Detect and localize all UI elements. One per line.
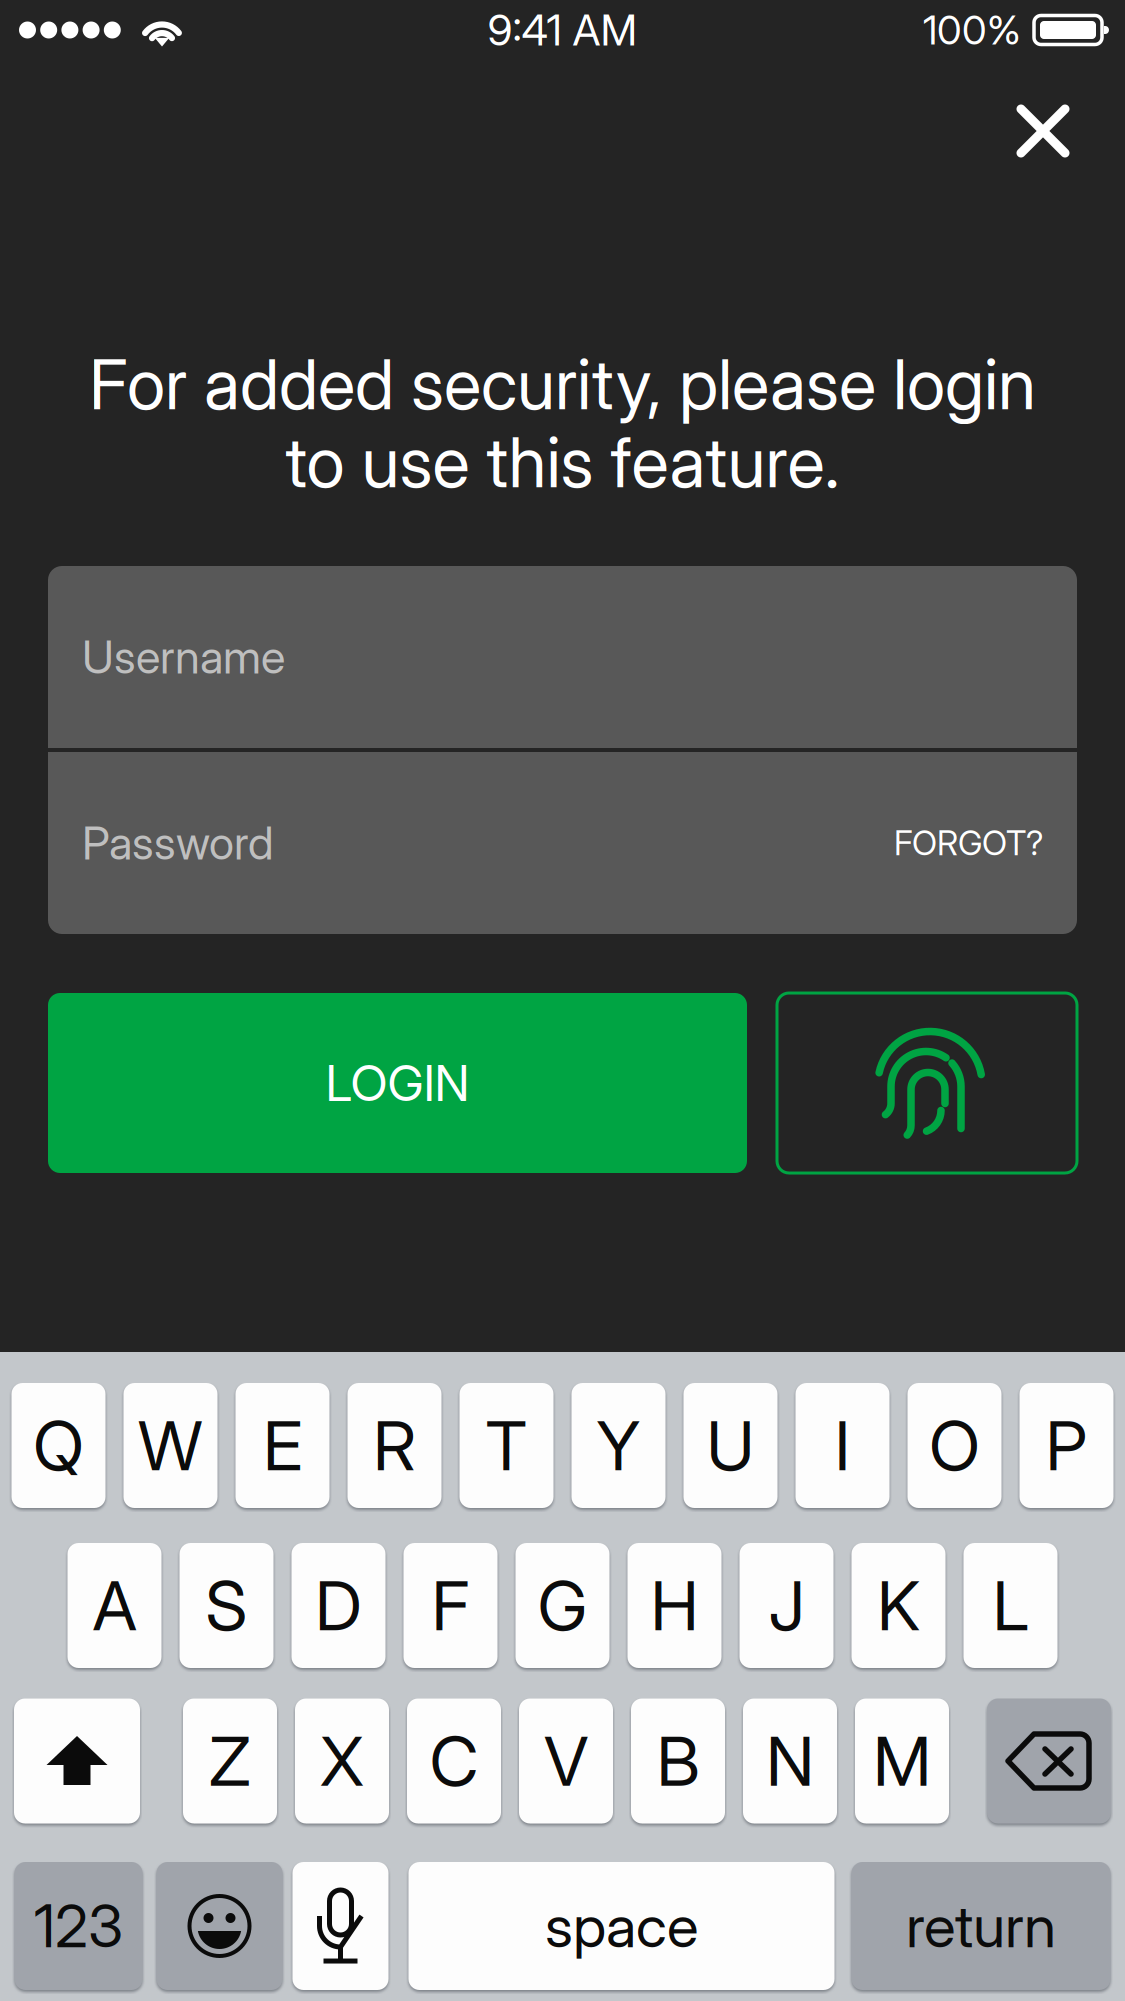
staticText: K [877, 1564, 920, 1647]
button[interactable]: Login with Touch ID [777, 993, 1077, 1173]
button[interactable]: I [795, 1383, 889, 1508]
staticText: M [873, 1720, 931, 1802]
button[interactable]: C [407, 1698, 501, 1823]
button[interactable]: F [403, 1543, 497, 1668]
button[interactable]: N [743, 1698, 837, 1823]
staticText: space [545, 1890, 698, 1961]
button[interactable]: H [627, 1543, 721, 1668]
staticText: D [315, 1564, 362, 1647]
staticText: C [429, 1720, 478, 1802]
button[interactable]: E [235, 1383, 329, 1508]
button[interactable]: 123 [14, 1862, 142, 1990]
button[interactable]: D [291, 1543, 385, 1668]
button[interactable]: O [907, 1383, 1001, 1508]
staticText: L [992, 1564, 1028, 1647]
button[interactable]: space [408, 1862, 834, 1990]
staticText: T [485, 1404, 527, 1487]
button[interactable]: J [739, 1543, 833, 1668]
staticText: I [834, 1404, 850, 1487]
button[interactable]: A [67, 1543, 161, 1668]
button[interactable]: P [1019, 1383, 1113, 1508]
staticText: V [544, 1720, 588, 1802]
staticText: LOGIN [325, 1053, 469, 1113]
button[interactable]: LOGIN [48, 993, 747, 1173]
staticText: E [263, 1404, 302, 1487]
staticText: X [320, 1720, 364, 1802]
staticText: P [1045, 1404, 1087, 1487]
staticText: O [929, 1404, 980, 1487]
button[interactable]: Dictate [292, 1862, 388, 1990]
button[interactable]: X [295, 1698, 389, 1823]
staticText: Y [596, 1404, 640, 1487]
button[interactable]: G [515, 1543, 609, 1668]
staticText: 9:41 AM [487, 4, 637, 56]
button[interactable]: Q [11, 1383, 105, 1508]
button[interactable]: Delete [987, 1698, 1111, 1823]
button[interactable]: Emoji [156, 1862, 282, 1990]
staticText: H [650, 1564, 698, 1647]
button[interactable]: R [347, 1383, 441, 1508]
button[interactable]: return [851, 1862, 1110, 1990]
button[interactable]: M [855, 1698, 949, 1823]
staticText: A [92, 1564, 136, 1647]
button[interactable]: W [123, 1383, 217, 1508]
button[interactable]: FORGOT? [884, 813, 1053, 873]
button[interactable]: B [631, 1698, 725, 1823]
button[interactable]: Close [988, 76, 1098, 186]
staticText: 100% [923, 6, 1021, 54]
button[interactable]: T [459, 1383, 553, 1508]
staticText: Q [33, 1404, 84, 1487]
staticText: S [205, 1564, 247, 1647]
staticText: For added security, please login [89, 342, 1036, 426]
button[interactable]: S [179, 1543, 273, 1668]
staticText: 123 [34, 1890, 123, 1961]
staticText: R [373, 1404, 416, 1487]
staticText: N [766, 1720, 814, 1802]
staticText: Z [209, 1720, 251, 1802]
staticText: Password [82, 816, 274, 870]
staticText: U [706, 1404, 754, 1487]
button[interactable]: Y [571, 1383, 665, 1508]
staticText: G [537, 1564, 587, 1647]
staticText: to use this feature. [285, 420, 839, 504]
button[interactable]: U [683, 1383, 777, 1508]
staticText: B [656, 1720, 699, 1802]
button[interactable]: Z [183, 1698, 277, 1823]
staticText: FORGOT? [894, 823, 1043, 863]
button[interactable]: L [963, 1543, 1057, 1668]
button[interactable]: K [851, 1543, 945, 1668]
staticText: F [431, 1564, 469, 1647]
staticText: W [138, 1404, 203, 1487]
staticText: J [768, 1564, 804, 1647]
button[interactable]: V [519, 1698, 613, 1823]
staticText: return [906, 1890, 1056, 1961]
staticText: Username [82, 630, 285, 684]
button[interactable]: Shift [14, 1698, 140, 1823]
